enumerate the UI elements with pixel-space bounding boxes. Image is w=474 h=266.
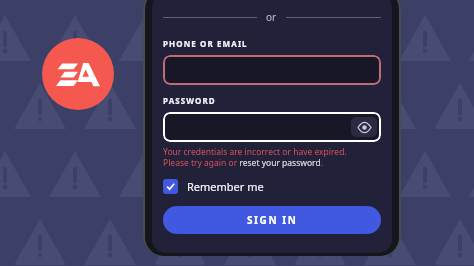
staticText: PASSWORD bbox=[163, 95, 216, 106]
button[interactable]: Remember me bbox=[163, 177, 264, 196]
button[interactable]: SIGN IN bbox=[163, 206, 381, 234]
button[interactable]: Password field bbox=[163, 112, 381, 142]
staticText: PHONE OR EMAIL bbox=[163, 38, 248, 49]
button[interactable]: Phone or email field bbox=[163, 55, 381, 85]
button[interactable]: Show password bbox=[351, 117, 377, 137]
button[interactable]: EA logo bbox=[42, 38, 114, 110]
staticText: Remember me bbox=[187, 179, 264, 194]
staticText: SIGN IN bbox=[247, 213, 298, 227]
staticText: or bbox=[266, 10, 277, 24]
staticText: Your credentials are incorrect or have e… bbox=[163, 146, 347, 168]
